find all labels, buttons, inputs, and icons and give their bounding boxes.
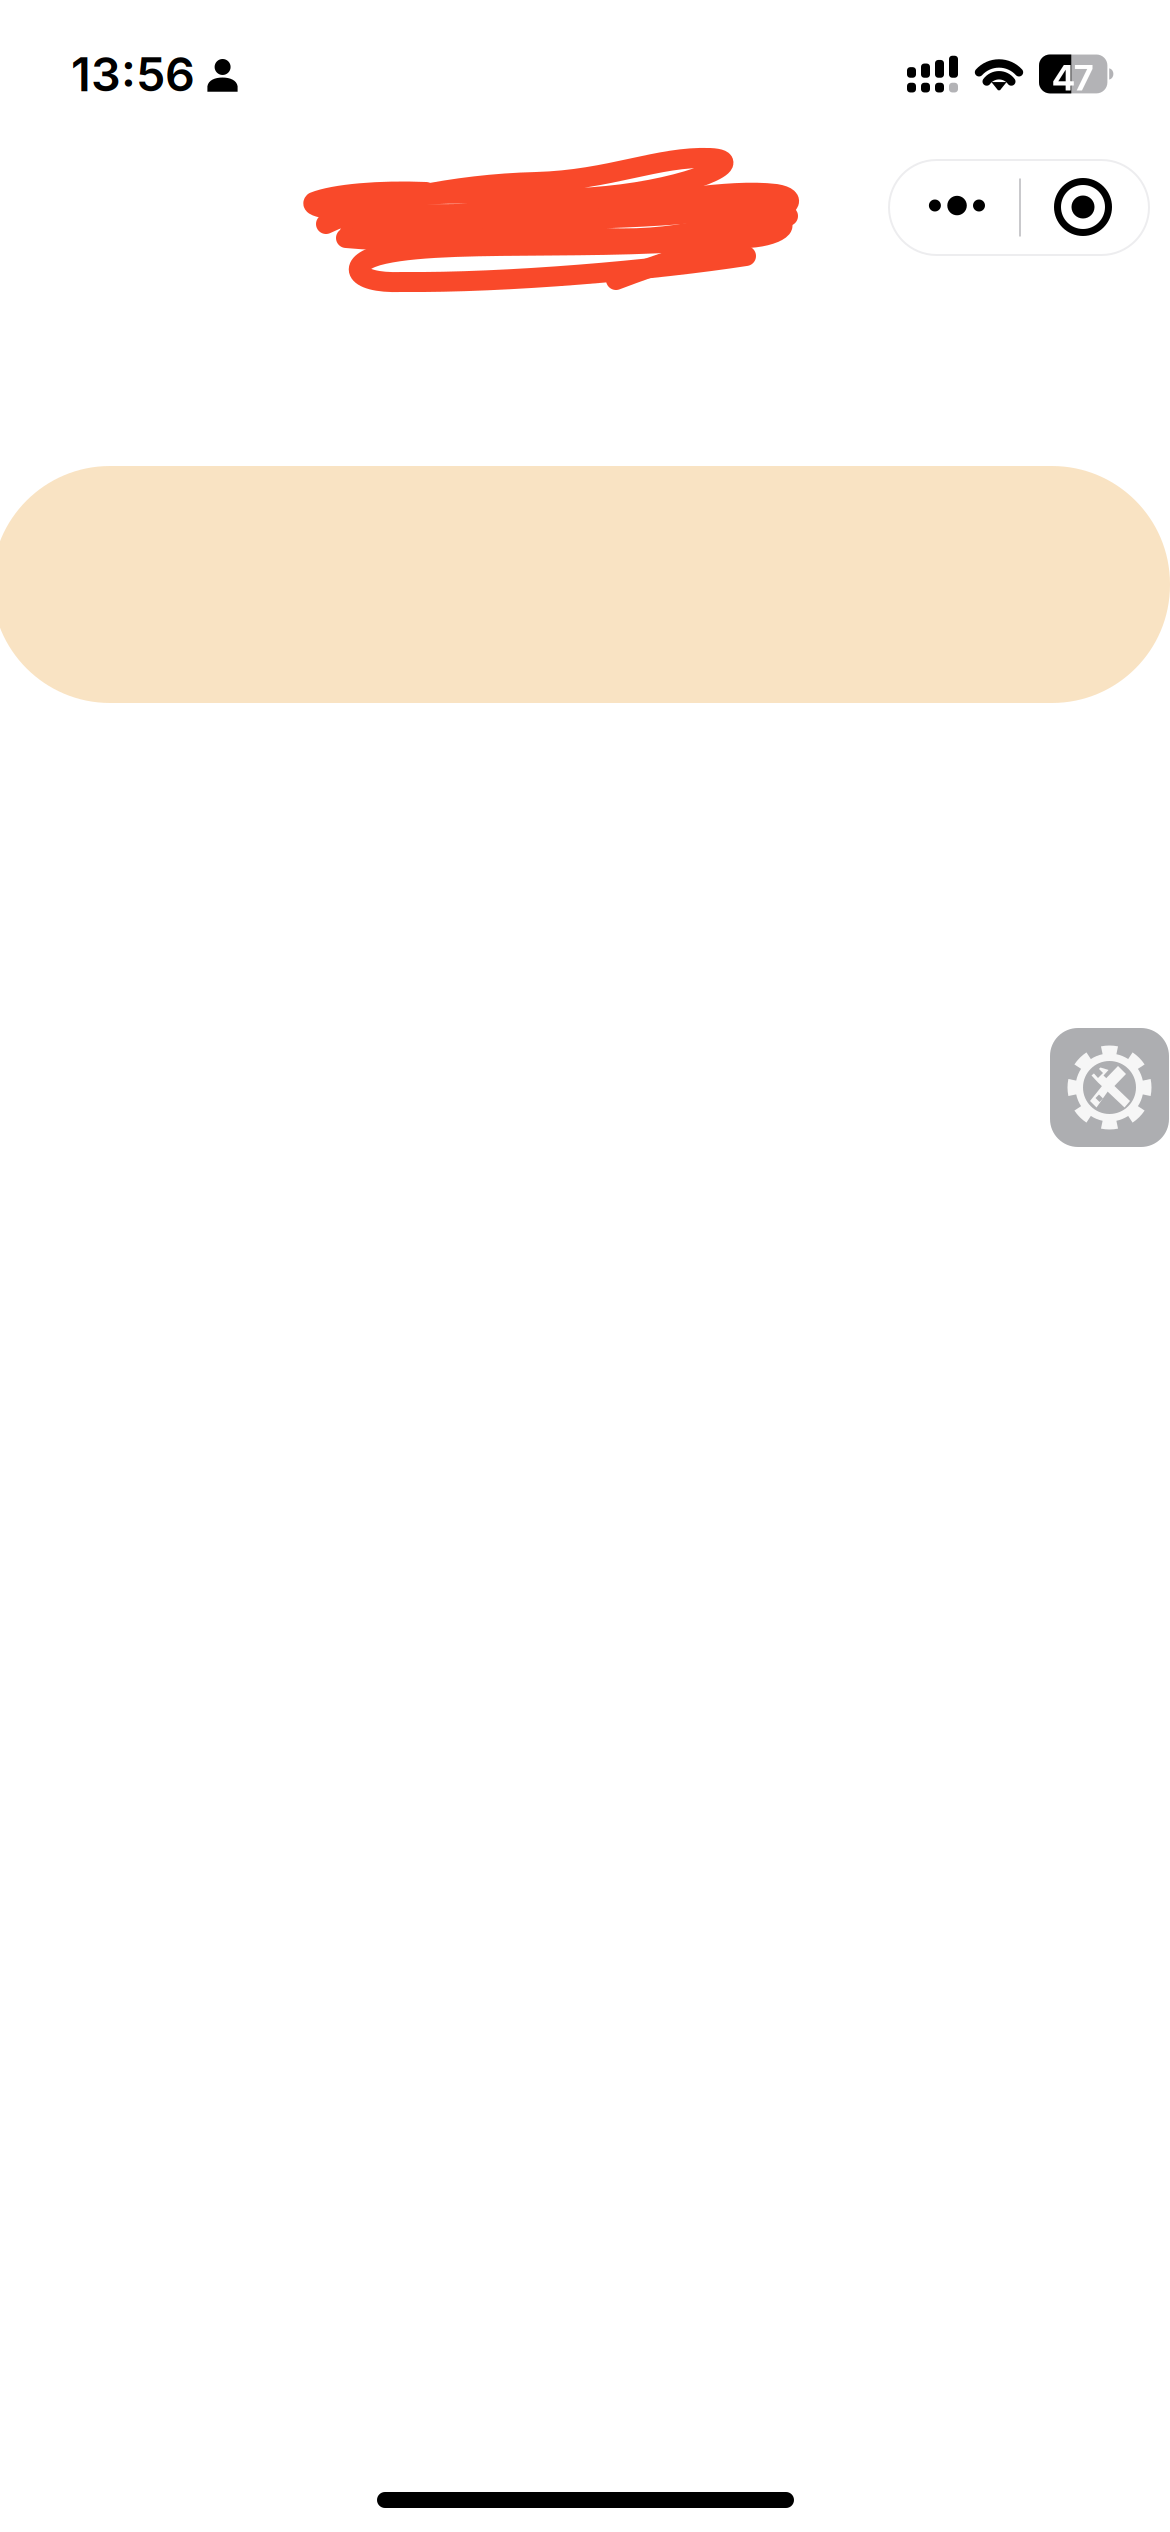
button[interactable]: Developer tools — [1050, 1028, 1169, 1147]
staticText: 13:56 — [71, 46, 195, 102]
staticText: 47 — [1052, 57, 1093, 99]
button[interactable]: More options and close mini program — [889, 160, 1149, 255]
